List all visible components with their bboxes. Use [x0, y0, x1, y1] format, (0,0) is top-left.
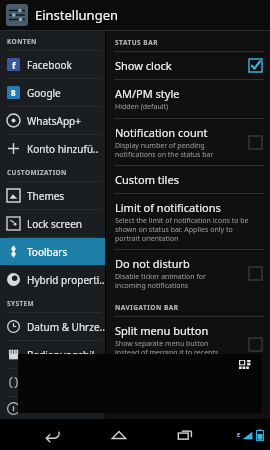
button[interactable]: Do not disturb — [106, 250, 270, 296]
staticText: Toolbars — [27, 245, 68, 259]
staticText: Hybrid properti.. — [27, 273, 105, 287]
button[interactable]: Unchecked — [249, 136, 262, 149]
staticText: Themes — [27, 189, 65, 203]
staticText: Show clock — [115, 58, 172, 73]
staticText: Custom tiles — [115, 172, 179, 187]
staticText: Konto hinzufü.. — [27, 142, 99, 156]
button[interactable]: Checked — [249, 59, 262, 72]
button[interactable]: Custom tiles — [106, 166, 270, 193]
staticText: Select the limit of notification icons t… — [115, 216, 249, 243]
staticText: Einstellungen — [35, 6, 119, 24]
button[interactable]: Home — [104, 419, 134, 450]
button[interactable]: Limit of notifications — [106, 194, 270, 249]
staticText: AM/PM style — [115, 86, 180, 101]
staticText: Notification count — [115, 125, 208, 140]
staticText: Disable ticker animation for incoming no… — [115, 272, 206, 290]
button[interactable]: Unchecked — [249, 267, 262, 280]
staticText: Lock screen — [27, 217, 83, 231]
staticText: Show separate menu button instead of mer… — [115, 339, 219, 366]
button[interactable]: Widgets — [239, 360, 254, 375]
staticText: CUSTOMIZATION — [7, 168, 67, 177]
staticText: Google — [27, 86, 61, 100]
staticText: Display number of pending notifications … — [115, 141, 214, 159]
staticText: Hidden (default) — [115, 102, 169, 112]
button[interactable]: Konto hinzufü.. — [0, 135, 105, 162]
staticText: NAVIGATION BAR — [115, 303, 179, 312]
staticText: E — [237, 431, 241, 439]
button[interactable]: Einstellungen — [0, 0, 270, 30]
button[interactable]: Show clock — [106, 52, 270, 79]
staticText: SYSTEM — [7, 299, 35, 308]
button[interactable]: Notification count — [106, 119, 270, 165]
staticText: Bedienungshil.. — [27, 348, 100, 362]
button[interactable]: Lock screen — [0, 210, 105, 237]
staticText: Split menu button — [115, 323, 209, 338]
button[interactable]: Hybrid properti.. — [0, 266, 105, 293]
button[interactable] — [0, 369, 105, 396]
button[interactable]: Datum & Uhrze.. — [0, 313, 105, 340]
button[interactable]: Toolbars — [0, 238, 105, 265]
button[interactable]: f — [0, 51, 105, 78]
button[interactable]: Split menu button — [106, 317, 270, 372]
staticText: 8 — [11, 87, 16, 98]
staticText: STATUS BAR — [115, 38, 158, 47]
button[interactable]: AM/PM style — [106, 80, 270, 118]
button[interactable]: Themes — [0, 182, 105, 209]
button[interactable]: Bedienungshil.. — [0, 341, 105, 368]
staticText: Limit of notifications — [115, 200, 221, 215]
button[interactable]: Recents — [170, 419, 200, 450]
staticText: Datum & Uhrze.. — [27, 320, 105, 334]
button[interactable]: WhatsApp+ — [0, 107, 105, 134]
staticText: Do not disturb — [115, 256, 190, 271]
staticText: Facebook — [27, 58, 72, 72]
button[interactable] — [0, 397, 105, 419]
button[interactable]: Unchecked — [249, 338, 262, 351]
staticText: WhatsApp+ — [27, 114, 81, 128]
button[interactable]: Widgets — [18, 354, 262, 413]
button[interactable]: Back — [38, 419, 68, 450]
button[interactable]: 8 — [0, 79, 105, 106]
staticText: KONTEN — [7, 37, 37, 46]
staticText: f — [12, 59, 16, 71]
